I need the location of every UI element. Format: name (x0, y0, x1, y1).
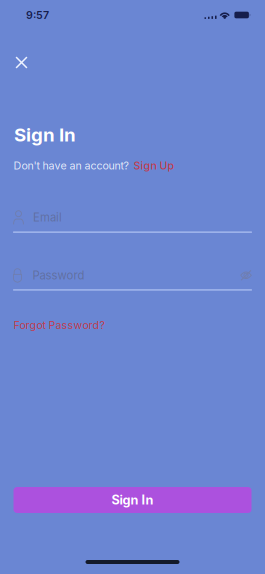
staticText: Sign In (14, 123, 76, 146)
staticText: Password (32, 268, 84, 282)
button[interactable]: Close (5, 46, 37, 78)
staticText: Sign In (111, 492, 153, 508)
staticText: Email (33, 211, 62, 224)
button[interactable]: Sign In (13, 487, 251, 513)
staticText: 9:57 (26, 8, 49, 21)
staticText: Sign Up (133, 159, 174, 172)
staticText: Don't have an account? (13, 159, 128, 172)
staticText: Forgot Password? (13, 319, 104, 331)
button[interactable]: Sign Up (133, 159, 174, 172)
button[interactable]: Show password (240, 269, 252, 281)
button[interactable]: Forgot Password? (13, 319, 104, 331)
